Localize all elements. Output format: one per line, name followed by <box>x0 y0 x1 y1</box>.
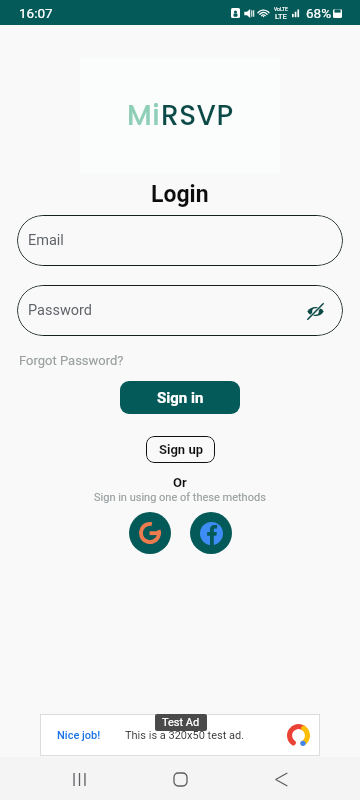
button[interactable]: Email <box>17 215 343 266</box>
button[interactable]: Forgot Password? <box>19 353 124 368</box>
staticText: This is a 320x50 test ad. <box>125 729 245 742</box>
staticText: RSVP <box>161 96 234 135</box>
staticText: Sign up <box>159 442 203 457</box>
staticText: Test Ad <box>162 716 200 729</box>
button[interactable]: Sign in with Google <box>129 512 171 554</box>
staticText: LTE <box>275 12 287 21</box>
button[interactable]: Home <box>159 758 201 800</box>
staticText: VoLTE <box>274 6 288 12</box>
staticText: Login <box>151 181 209 208</box>
button[interactable]: Sign in with Facebook <box>190 512 232 554</box>
staticText: Sign in <box>157 389 204 407</box>
staticText: 68% <box>306 5 332 21</box>
button[interactable]: Recent apps <box>58 758 100 800</box>
staticText: 16:07 <box>19 5 53 21</box>
staticText: Mi <box>127 96 161 135</box>
button[interactable]: Nice job! <box>40 714 320 756</box>
staticText: Or <box>173 475 187 490</box>
staticText: Sign in using one of these methods <box>94 491 266 504</box>
button[interactable]: Password <box>17 285 343 336</box>
button[interactable]: Sign up <box>146 436 215 463</box>
button[interactable]: Sign in <box>120 381 240 414</box>
button[interactable]: Back <box>260 758 302 800</box>
staticText: Email <box>28 232 64 249</box>
staticText: Password <box>28 302 93 319</box>
button[interactable]: Show password <box>303 299 327 323</box>
staticText: Nice job! <box>57 729 101 742</box>
